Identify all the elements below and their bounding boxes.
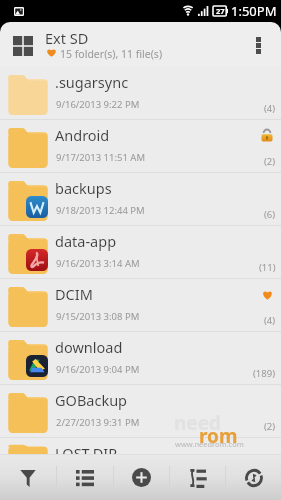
staticText: Ext SD	[45, 28, 89, 48]
button[interactable]: Add	[114, 455, 169, 500]
staticText: 9/15/2013 3:08 PM	[56, 310, 140, 323]
staticText: (4)	[264, 102, 276, 115]
staticText: rom	[199, 423, 238, 449]
staticText: .sugarsync	[55, 72, 129, 92]
staticText: (2)	[264, 155, 276, 168]
button[interactable]: data-app	[0, 226, 281, 279]
button[interactable]: GOBackup	[0, 385, 281, 438]
staticText: 9/16/2013 3:14 AM	[56, 257, 140, 270]
button[interactable]: LOST.DIR	[0, 438, 281, 455]
staticText: 2/27/2013 9:31 PM	[56, 416, 140, 429]
button[interactable]: More options	[243, 30, 273, 60]
staticText: backups	[55, 178, 112, 198]
button[interactable]: List view	[57, 455, 113, 500]
button[interactable]: Grid view	[7, 30, 38, 61]
staticText: (4)	[264, 314, 276, 327]
staticText: data-app	[55, 231, 117, 251]
staticText: 1:50PM	[231, 2, 277, 20]
staticText: 27	[216, 6, 225, 16]
staticText: 9/16/2013 9:22 PM	[56, 98, 140, 111]
staticText: GOBackup	[55, 390, 128, 410]
staticText: 15 folder(s), 11 file(s)	[60, 47, 163, 61]
staticText: 9/16/2013 9:04 PM	[56, 363, 140, 376]
button[interactable]: Android	[0, 120, 281, 173]
staticText: LOST.DIR	[55, 443, 118, 460]
staticText: download	[55, 337, 123, 357]
staticText: need	[174, 410, 222, 436]
button[interactable]: DCIM	[0, 279, 281, 332]
staticText: DCIM	[55, 284, 93, 304]
staticText: (2)	[264, 420, 276, 433]
staticText: www.needrom.com	[175, 439, 244, 449]
staticText: 9/18/2013 12:44 PM	[56, 204, 145, 217]
button[interactable]: download	[0, 332, 281, 385]
button[interactable]: Sort	[170, 455, 225, 500]
staticText: (11)	[259, 261, 276, 274]
button[interactable]: Refresh	[226, 455, 281, 500]
staticText: Android	[55, 125, 110, 145]
button[interactable]: backups	[0, 173, 281, 226]
button[interactable]: Filter	[0, 455, 56, 500]
button[interactable]: .sugarsync	[0, 67, 281, 120]
staticText: (189)	[253, 367, 276, 380]
staticText: 9/17/2013 11:51 AM	[56, 151, 146, 164]
staticText: (6)	[264, 208, 276, 221]
